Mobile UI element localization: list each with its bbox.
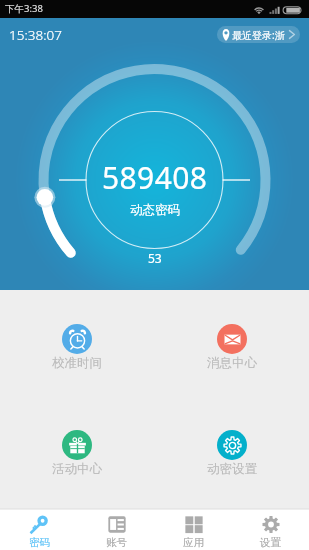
staticText: 53 bbox=[148, 250, 162, 266]
staticText: 设置 bbox=[260, 536, 281, 549]
staticText: 校准时间 bbox=[52, 355, 102, 371]
staticText: 消息中心 bbox=[207, 355, 257, 371]
staticText: 15:38:07 bbox=[9, 26, 62, 44]
staticText: 最近登录:浙 bbox=[232, 28, 285, 42]
button[interactable]: 设置 bbox=[232, 509, 309, 550]
staticText: 活动中心 bbox=[52, 461, 102, 477]
staticText: 应用 bbox=[183, 536, 204, 549]
staticText: 下午3:38 bbox=[5, 2, 43, 15]
button[interactable]: 账号 bbox=[78, 509, 155, 550]
staticText: 动密设置 bbox=[207, 461, 257, 477]
button[interactable]: 最近登录:浙 bbox=[217, 26, 300, 43]
staticText: 密码 bbox=[29, 536, 50, 549]
button[interactable]: 动密设置 bbox=[154, 430, 309, 477]
button[interactable]: 校准时间 bbox=[0, 324, 154, 371]
staticText: 账号 bbox=[106, 536, 127, 549]
staticText: 589408 bbox=[102, 157, 208, 198]
staticText: 动态密码 bbox=[130, 202, 180, 218]
button[interactable]: 消息中心 bbox=[154, 324, 309, 371]
button[interactable]: 密码 bbox=[0, 509, 78, 550]
button[interactable]: 应用 bbox=[155, 509, 232, 550]
button[interactable]: 活动中心 bbox=[0, 430, 154, 477]
